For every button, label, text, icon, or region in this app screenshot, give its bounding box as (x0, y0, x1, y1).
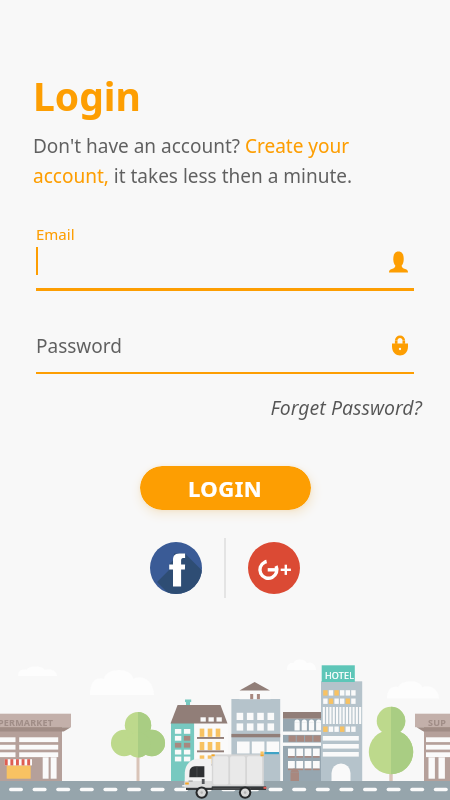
staticText: Don't have an account? Create your accou… (33, 133, 422, 188)
staticText: Login (33, 69, 141, 122)
button[interactable]: Forget Password? (0, 394, 422, 421)
button[interactable] (36, 247, 414, 291)
button[interactable]: Password (36, 333, 414, 374)
button[interactable]: LOGIN (140, 466, 311, 510)
staticText: Password (36, 333, 122, 359)
staticText: LOGIN (188, 473, 263, 503)
staticText: HOTEL (325, 669, 355, 681)
staticText: SUP (428, 716, 446, 728)
button[interactable]: Sign in with Google (248, 542, 300, 594)
button[interactable]: Sign in with Facebook (150, 542, 202, 594)
staticText: Email (36, 224, 75, 244)
staticText: PERMARKET (0, 716, 54, 728)
